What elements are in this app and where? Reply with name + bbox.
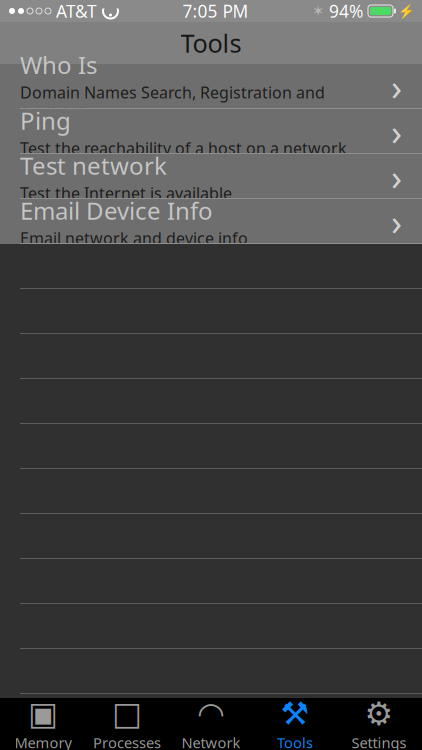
staticText: Test network [20,149,167,181]
staticText: Settings [351,733,406,750]
staticText: Email Device Info [20,194,213,226]
button[interactable]: ▣ [1,698,85,750]
button[interactable]: Test network [0,154,422,199]
button[interactable]: ◠ [169,698,253,750]
staticText: Test the reachability of a host on a net… [20,137,347,158]
button[interactable]: Email Device Info [0,199,422,244]
staticText: ⚙ [364,696,393,732]
staticText: AT&T [56,0,97,22]
staticText: 94% [329,0,363,22]
staticText: Test the Internet is available [20,182,232,203]
staticText: › [391,198,402,245]
staticText: Who Is [20,49,97,81]
staticText: Network [181,733,240,750]
staticText: Processes [93,733,161,750]
staticText: □ [112,696,142,732]
button[interactable]: Who Is [0,64,422,109]
staticText: › [391,108,402,155]
staticText: ✶ [312,3,324,19]
button[interactable]: ⚒ [253,698,337,750]
staticText: ⚒ [280,696,309,732]
staticText: Email network and device info [20,227,248,248]
staticText: Tools [277,733,313,750]
staticText: 7:05 PM [182,0,248,22]
staticText: Memory [14,733,71,750]
staticText: ▣ [28,696,58,732]
button[interactable]: Ping [0,109,422,154]
button[interactable]: □ [85,698,169,750]
staticText: Tools [180,26,241,60]
staticText: › [391,153,402,200]
staticText: ⚡ [398,3,415,19]
staticText: Ping [20,104,71,136]
staticText: › [391,63,402,110]
staticText: ◠ [197,696,225,732]
staticText: Domain Names Search, Registration and Av… [20,82,325,124]
button[interactable]: ⚙ [337,698,421,750]
